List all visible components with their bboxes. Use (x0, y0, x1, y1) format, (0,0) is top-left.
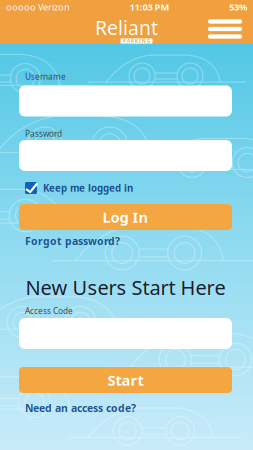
button[interactable]: Log In (19, 204, 232, 230)
staticText: Need an access code? (25, 401, 136, 415)
staticText: Reliant (95, 14, 158, 41)
button[interactable]: Forgot password? (25, 234, 120, 248)
staticText: Password (25, 128, 62, 139)
staticText: 11:03 PM (129, 1, 169, 13)
staticText: ooooo Verizon (6, 1, 70, 13)
staticText: 53% (229, 1, 247, 13)
staticText: Start (107, 370, 143, 390)
button[interactable]: Keep me logged in (25, 181, 133, 195)
staticText: Username (25, 71, 66, 82)
staticText: Log In (102, 207, 148, 227)
staticText: Keep me logged in (43, 181, 133, 195)
staticText: Access Code (25, 305, 73, 316)
staticText: New Users Start Here (25, 273, 225, 301)
button[interactable]: Need an access code? (25, 401, 136, 415)
button[interactable]: Start (19, 367, 232, 393)
staticText: Forgot password? (25, 234, 120, 248)
button[interactable]: Menu (202, 14, 248, 44)
staticText: P A R K I N G (123, 38, 150, 44)
